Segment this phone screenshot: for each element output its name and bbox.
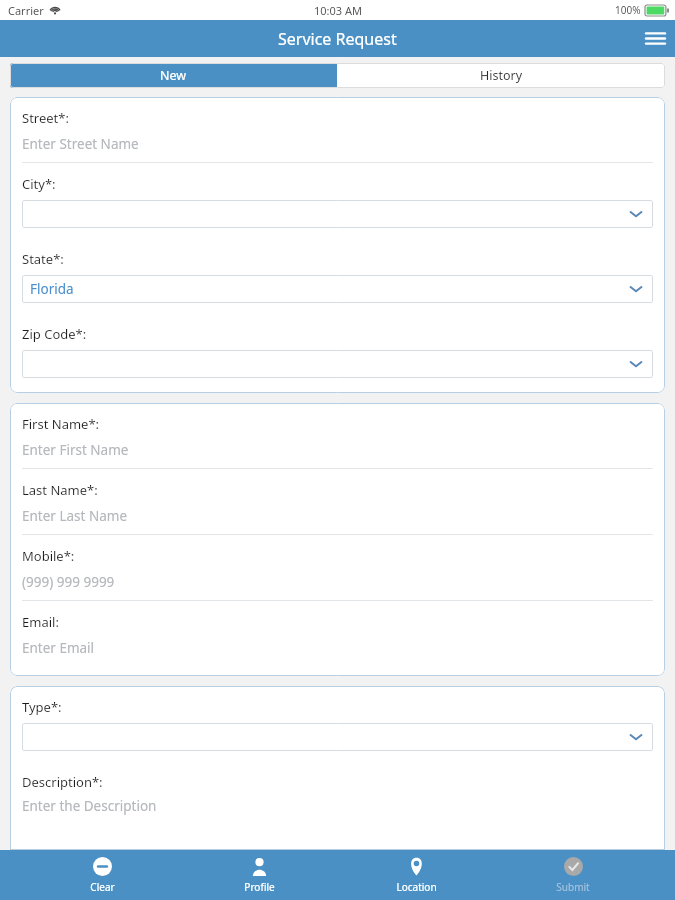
button[interactable]: Type*: (22, 686, 653, 761)
button[interactable]: Profile (204, 850, 314, 900)
staticText: History (480, 67, 523, 84)
staticText: Carrier (8, 3, 44, 18)
staticText: Zip Code*: (22, 325, 87, 343)
button[interactable]: New (10, 63, 337, 88)
staticText: Enter First Name (22, 441, 129, 459)
staticText: Enter Street Name (22, 135, 139, 153)
button[interactable]: Mobile*: (22, 535, 653, 601)
button[interactable]: Last Name*: (22, 469, 653, 535)
button[interactable]: Zip Code*: (22, 313, 653, 388)
staticText: Type*: (22, 698, 62, 716)
staticText: 10:03 AM (314, 3, 362, 18)
staticText: (999) 999 9999 (22, 573, 115, 591)
button[interactable]: Street*: (22, 97, 653, 163)
button[interactable]: Description*: (22, 773, 653, 815)
button[interactable]: Menu (635, 20, 675, 57)
staticText: City*: (22, 175, 56, 193)
staticText: Street*: (22, 109, 69, 127)
staticText: Submit (556, 880, 590, 894)
staticText: Profile (244, 880, 275, 894)
button[interactable]: Clear (47, 850, 157, 900)
staticText: Email: (22, 613, 59, 631)
staticText: Enter Email (22, 639, 95, 657)
button[interactable]: Location (361, 850, 471, 900)
button[interactable]: State*: (22, 238, 653, 313)
button[interactable]: Email: (22, 601, 653, 666)
staticText: Last Name*: (22, 481, 98, 499)
button[interactable]: First Name*: (22, 403, 653, 469)
staticText: Enter Last Name (22, 507, 127, 525)
button[interactable]: City*: (22, 163, 653, 238)
staticText: Description*: (22, 773, 103, 791)
staticText: Enter the Description (22, 797, 157, 815)
button[interactable]: Submit (518, 850, 628, 900)
staticText: Service Request (278, 28, 397, 50)
staticText: Location (396, 880, 437, 894)
staticText: Clear (90, 880, 115, 894)
staticText: Florida (30, 280, 74, 298)
staticText: State*: (22, 250, 64, 268)
staticText: 100% (615, 3, 641, 17)
staticText: First Name*: (22, 415, 100, 433)
staticText: Mobile*: (22, 547, 75, 565)
staticText: New (160, 67, 187, 84)
button[interactable]: History (337, 63, 665, 88)
